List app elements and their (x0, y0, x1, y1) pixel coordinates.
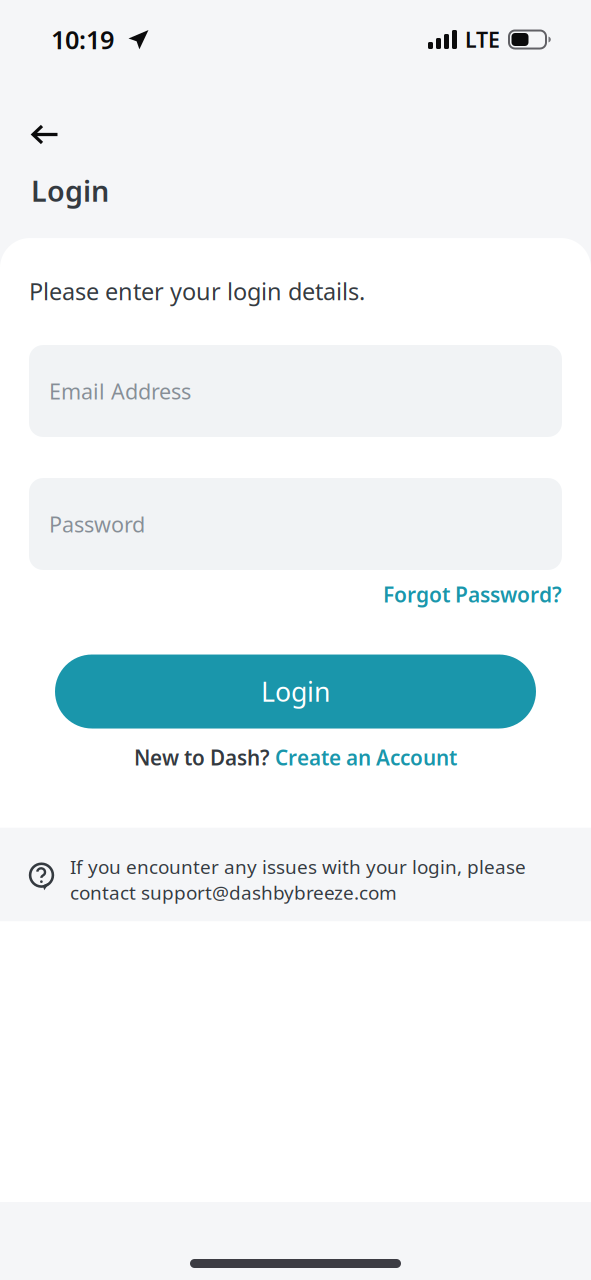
staticText: 10:19 (51, 22, 114, 57)
button[interactable]: Forgot Password? (383, 578, 562, 610)
button[interactable]: Back (0, 109, 83, 160)
staticText: Login (261, 673, 330, 710)
staticText: Password (49, 509, 145, 539)
staticText: Email Address (49, 376, 191, 406)
staticText: Create an Account (275, 743, 457, 772)
staticText: New to Dash? (134, 743, 275, 772)
staticText: LTE (465, 25, 500, 54)
button[interactable]: Login (29, 654, 562, 728)
staticText: Forgot Password? (383, 580, 562, 608)
staticText: If you encounter any issues with your lo… (70, 854, 526, 905)
staticText: Please enter your login details. (29, 275, 365, 307)
button[interactable]: Create an Account (275, 743, 457, 772)
staticText: Login (31, 171, 109, 210)
